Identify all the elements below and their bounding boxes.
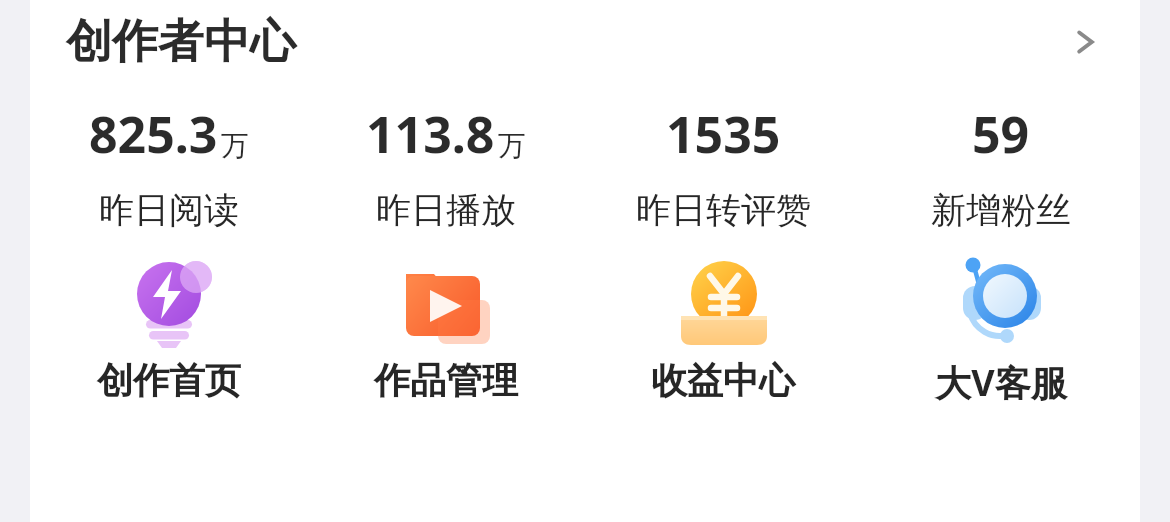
staticText: 新增粉丝 — [931, 188, 1071, 232]
staticText: 作品管理 — [374, 358, 518, 403]
button[interactable]: 59 — [862, 84, 1140, 232]
button[interactable]: 创作首页 — [30, 252, 307, 403]
button[interactable]: 825.3 — [30, 84, 307, 232]
staticText: 收益中心 — [651, 358, 795, 403]
staticText: 创作首页 — [97, 358, 241, 403]
button[interactable]: 1535 — [584, 84, 862, 232]
button[interactable]: 113.8 — [307, 84, 584, 232]
staticText: 59 — [972, 100, 1030, 168]
staticText: 万 — [221, 128, 249, 163]
staticText: 大V客服 — [935, 358, 1067, 407]
button[interactable]: 创作者中心 — [30, 0, 1140, 84]
button[interactable]: 大V客服 — [862, 252, 1140, 407]
staticText: 万 — [498, 128, 526, 163]
staticText: 昨日阅读 — [99, 188, 239, 232]
staticText: 1535 — [666, 100, 781, 168]
button[interactable]: 作品管理 — [307, 252, 584, 403]
other: More — [1068, 25, 1102, 59]
staticText: 昨日播放 — [376, 188, 516, 232]
staticText: 113.8 — [366, 100, 495, 168]
staticText: 创作者中心 — [66, 13, 296, 71]
staticText: 昨日转评赞 — [636, 188, 811, 232]
button[interactable]: 收益中心 — [584, 252, 862, 403]
staticText: 825.3 — [89, 100, 218, 168]
